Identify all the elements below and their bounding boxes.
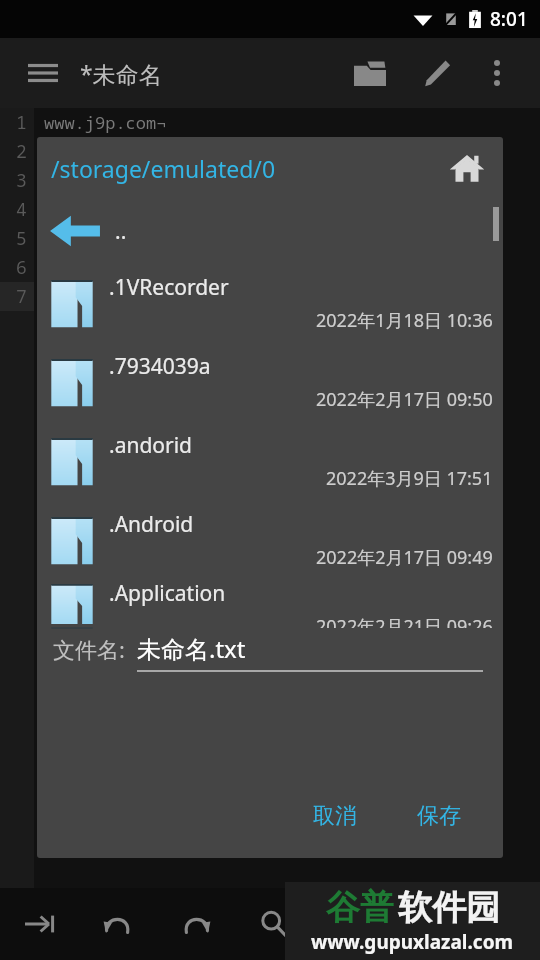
staticText: *未命名: [80, 58, 162, 89]
staticText: 2022年2月21日 09:26: [316, 614, 493, 628]
button[interactable]: Redo: [166, 894, 226, 954]
button[interactable]: More options: [474, 50, 520, 96]
button[interactable]: Edit: [410, 47, 462, 99]
staticText: 7: [16, 284, 27, 309]
staticText: .Application: [109, 579, 226, 608]
button[interactable]: Menu: [20, 50, 66, 96]
button[interactable]: .7934039a: [37, 342, 503, 421]
button[interactable]: ..: [37, 199, 503, 263]
staticText: ..: [115, 217, 127, 246]
button[interactable]: Home: [441, 142, 493, 194]
button[interactable]: .Android: [37, 500, 503, 579]
staticText: 取消: [313, 802, 357, 830]
staticText: 2022年2月17日 09:50: [316, 387, 493, 412]
staticText: 6: [16, 255, 27, 280]
staticText: .andorid: [109, 431, 193, 460]
staticText: 保存: [417, 802, 461, 830]
staticText: 谷普: [326, 886, 394, 929]
button[interactable]: Open: [344, 47, 396, 99]
button[interactable]: Tab: [10, 894, 70, 954]
staticText: www.j9p.com¬: [44, 111, 167, 134]
staticText: 2022年1月18日 10:36: [316, 308, 493, 333]
button[interactable]: 取消: [295, 792, 375, 840]
staticText: www.gupuxlazal.com: [311, 929, 514, 955]
button[interactable]: .1VRecorder: [37, 263, 503, 342]
staticText: /storage/emulated/0: [51, 153, 276, 184]
staticText: 未命名.txt: [137, 632, 246, 665]
staticText: 3: [16, 168, 27, 193]
staticText: 2: [16, 139, 27, 164]
button[interactable]: Search: [244, 894, 304, 954]
button[interactable]: .andorid: [37, 421, 503, 500]
button[interactable]: 未命名.txt: [137, 632, 483, 672]
staticText: 5: [16, 226, 27, 251]
staticText: .1VRecorder: [109, 273, 229, 302]
staticText: .Android: [109, 510, 194, 539]
staticText: 4: [16, 197, 27, 222]
staticText: .7934039a: [109, 352, 211, 381]
staticText: 文件名:: [53, 634, 125, 664]
staticText: 软件园: [398, 886, 500, 929]
staticText: 2022年3月9日 17:51: [326, 466, 493, 491]
staticText: 1: [16, 110, 27, 135]
button[interactable]: Undo: [88, 894, 148, 954]
button[interactable]: .Application: [37, 579, 503, 628]
staticText: 2022年2月17日 09:49: [316, 545, 493, 570]
button[interactable]: 保存: [399, 792, 479, 840]
staticText: 8:01: [490, 6, 528, 32]
